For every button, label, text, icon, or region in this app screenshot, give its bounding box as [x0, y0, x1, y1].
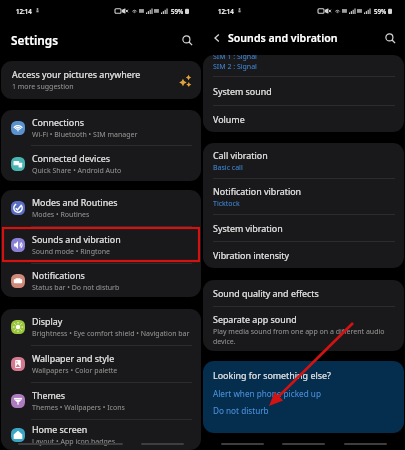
- staticText: Sounds and vibration: [32, 233, 121, 245]
- staticText: Do not disturb: [213, 405, 269, 416]
- button[interactable]: Home screen: [1, 420, 201, 450]
- staticText: Modes • Routines: [32, 210, 90, 220]
- staticText: System sound: [213, 85, 272, 97]
- staticText: Quick Share • Android Auto: [32, 166, 122, 176]
- staticText: Home screen: [32, 423, 88, 435]
- staticText: Call vibration: [213, 149, 268, 161]
- staticText: Basic call: [213, 163, 243, 173]
- button[interactable]: Search: [178, 31, 196, 49]
- button[interactable]: Access your pictures anywhere: [1, 61, 201, 99]
- button[interactable]: Vibration intensity: [203, 242, 404, 268]
- staticText: Notification vibration: [213, 185, 302, 197]
- staticText: Ticktock: [213, 199, 240, 209]
- staticText: Wi-Fi • Bluetooth • SIM manager: [32, 130, 138, 140]
- button[interactable]: Call vibration: [203, 143, 404, 178]
- staticText: Access your pictures anywhere: [12, 68, 141, 80]
- staticText: Themes • Wallpapers • Icons: [32, 403, 125, 413]
- button[interactable]: System sound: [203, 77, 404, 105]
- staticText: 59%: [171, 7, 184, 15]
- staticText: Status bar • Do not disturb: [32, 283, 120, 293]
- button[interactable]: Volume: [203, 106, 404, 132]
- staticText: Vibration intensity: [213, 249, 290, 261]
- staticText: Connected devices: [32, 152, 110, 164]
- button[interactable]: [344, 443, 387, 445]
- staticText: 12:14: [16, 7, 32, 15]
- staticText: Play media sound from one app on a diffe…: [213, 327, 391, 346]
- staticText: Display: [32, 315, 63, 327]
- button[interactable]: Themes: [1, 383, 201, 419]
- button[interactable]: Search: [381, 29, 399, 47]
- button[interactable]: Notifications: [1, 264, 201, 297]
- button[interactable]: Modes and Routines: [1, 190, 201, 226]
- staticText: Sounds and vibration: [228, 31, 338, 45]
- button[interactable]: Notification vibration: [203, 179, 404, 214]
- button[interactable]: SIM 1 : Signal: [203, 55, 404, 76]
- button[interactable]: Wallpaper and style: [1, 346, 201, 382]
- staticText: Brightness • Eye comfort shield • Naviga…: [32, 329, 190, 339]
- button[interactable]: Display: [1, 309, 201, 345]
- button[interactable]: Separate app sound: [203, 307, 404, 351]
- staticText: Notifications: [32, 269, 85, 281]
- staticText: Wallpaper and style: [32, 352, 115, 364]
- staticText: Looking for something else?: [213, 369, 331, 381]
- button[interactable]: Connected devices: [1, 146, 201, 181]
- staticText: Separate app sound: [213, 313, 297, 325]
- staticText: Alert when phone picked up: [213, 388, 321, 399]
- staticText: Sound mode • Ringtone: [32, 247, 110, 257]
- staticText: Wallpapers • Color palette: [32, 366, 118, 376]
- staticText: 12:14: [218, 7, 234, 15]
- button[interactable]: Sound quality and effects: [203, 280, 404, 306]
- button[interactable]: Connections: [1, 110, 201, 145]
- button[interactable]: Sounds and vibration: [1, 227, 201, 263]
- staticText: Sound quality and effects: [213, 287, 319, 299]
- staticText: 59%: [374, 7, 387, 15]
- staticText: SIM 2 : Signal: [213, 62, 257, 72]
- staticText: Themes: [32, 389, 66, 401]
- button[interactable]: Do not disturb: [213, 405, 269, 416]
- staticText: SIM 1 : Signal: [213, 55, 257, 62]
- button[interactable]: [221, 443, 264, 445]
- staticText: Layout • App icon badges: [32, 437, 116, 447]
- staticText: Settings: [11, 32, 59, 48]
- staticText: Modes and Routines: [32, 196, 118, 208]
- button[interactable]: Alert when phone picked up: [213, 388, 321, 399]
- staticText: Connections: [32, 116, 84, 128]
- staticText: Volume: [213, 113, 245, 125]
- button[interactable]: [282, 443, 325, 445]
- staticText: 1 more suggestion: [12, 82, 74, 92]
- button[interactable]: System vibration: [203, 215, 404, 241]
- staticText: System vibration: [213, 222, 283, 234]
- button[interactable]: Back: [208, 29, 225, 46]
